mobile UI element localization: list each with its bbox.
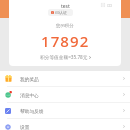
staticText: 您的积分 <box>56 23 74 29</box>
button[interactable]: 积分等值金额=35.78元 <box>40 54 91 60</box>
staticText: 已认证 <box>55 10 67 15</box>
staticText: test <box>61 3 70 10</box>
button[interactable]: 设置 <box>0 119 130 130</box>
button[interactable]: 帮助与反馈 <box>0 103 130 118</box>
button[interactable]: Check in <box>107 4 112 7</box>
staticText: 设置 <box>20 124 30 130</box>
button[interactable]: 我的奖品 <box>0 71 130 86</box>
staticText: 帮助与反馈 <box>20 108 44 114</box>
staticText: 消息中心 <box>20 92 39 98</box>
staticText: 我的奖品 <box>20 76 39 82</box>
staticText: 积分等值金额=35.78元 <box>40 54 88 60</box>
staticText: 17892 <box>41 31 90 51</box>
button[interactable]: 已认证 <box>48 9 73 16</box>
button[interactable]: 消息中心 <box>0 87 130 102</box>
button[interactable]: Scan QR code <box>101 3 105 7</box>
